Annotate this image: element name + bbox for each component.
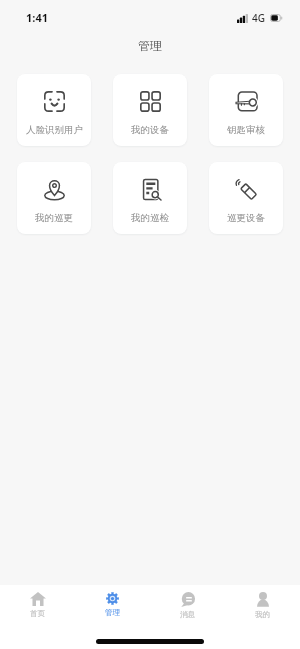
- staticText: 4G: [252, 11, 265, 25]
- staticText: 人脸识别用户: [26, 124, 83, 136]
- staticText: 我的设备: [131, 124, 169, 136]
- staticText: 钥匙审核: [227, 124, 265, 136]
- button[interactable]: 我的巡检: [113, 162, 187, 234]
- button[interactable]: 首页: [0, 585, 75, 627]
- button[interactable]: 消息: [150, 585, 225, 627]
- staticText: 我的巡更: [35, 212, 73, 224]
- staticText: 管理: [105, 608, 120, 617]
- staticText: 1:41: [26, 10, 48, 25]
- button[interactable]: 我的设备: [113, 74, 187, 146]
- staticText: 巡更设备: [227, 212, 265, 224]
- button[interactable]: 我的: [225, 585, 300, 627]
- staticText: 管理: [138, 38, 162, 53]
- button[interactable]: 我的巡更: [17, 162, 91, 234]
- button[interactable]: 人脸识别用户: [17, 74, 91, 146]
- staticText: 我的: [255, 610, 270, 619]
- button[interactable]: 管理: [75, 585, 150, 627]
- staticText: 消息: [180, 610, 195, 619]
- button[interactable]: 钥匙审核: [209, 74, 283, 146]
- staticText: 我的巡检: [131, 212, 169, 224]
- staticText: 首页: [30, 609, 45, 618]
- button[interactable]: 巡更设备: [209, 162, 283, 234]
